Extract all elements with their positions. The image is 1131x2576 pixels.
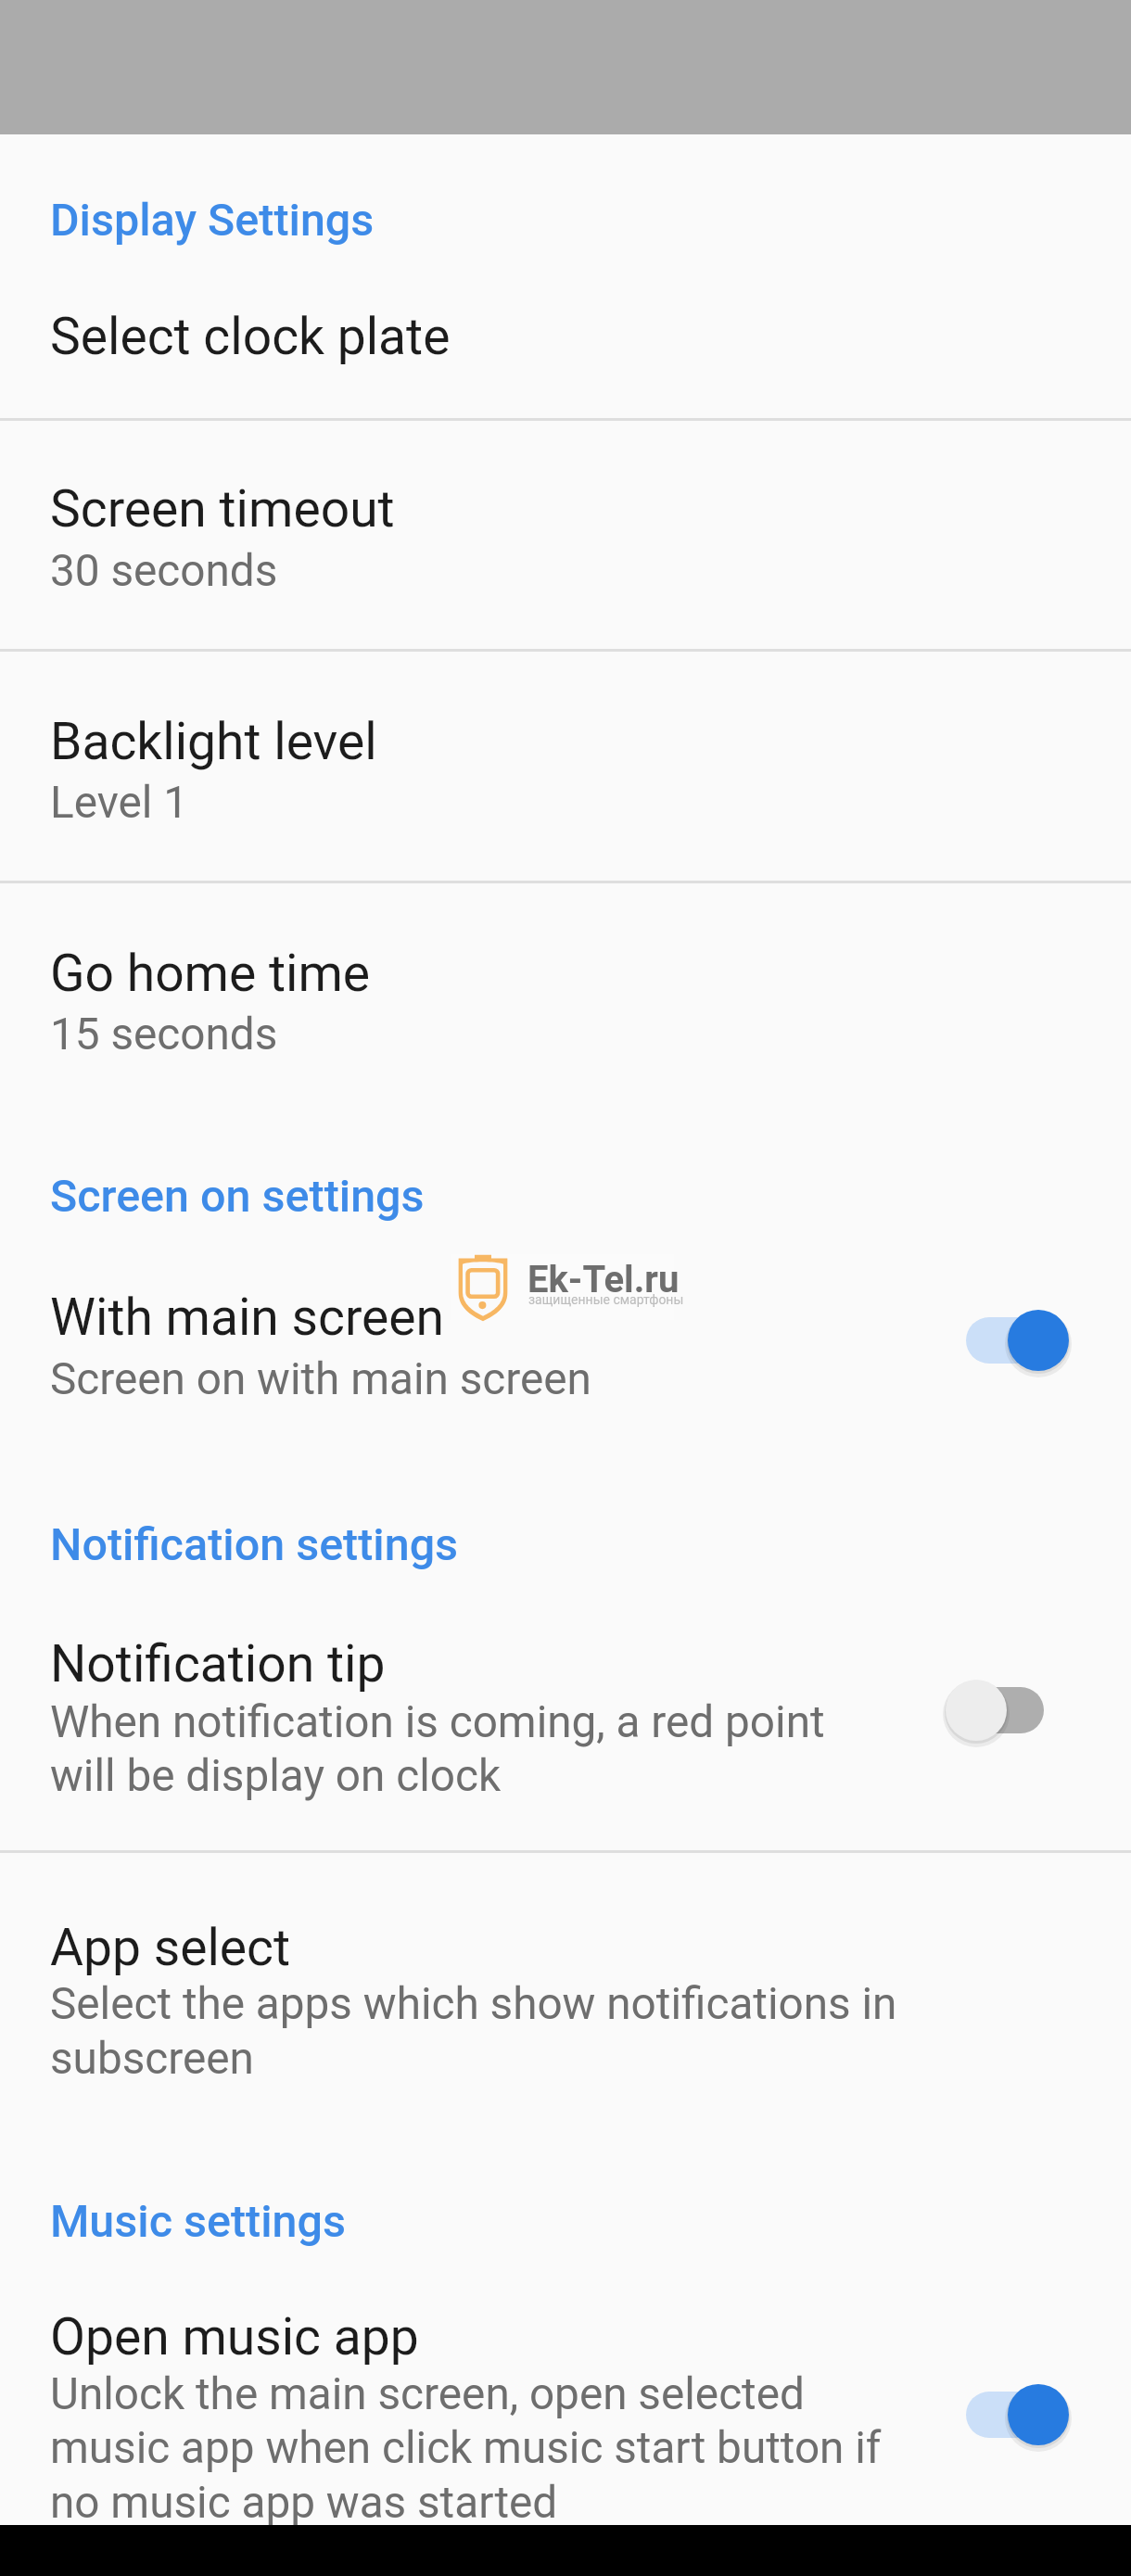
staticText: Display Settings <box>50 194 375 247</box>
staticText: защищенные смартфоны <box>528 1292 684 1307</box>
staticText: Notification tip <box>50 1634 386 1694</box>
staticText: With main screen <box>50 1288 445 1348</box>
staticText: subscreen <box>50 2033 254 2085</box>
button[interactable]: Screen timeout <box>0 421 1131 649</box>
staticText: Go home time <box>50 944 371 1004</box>
staticText: Open music app <box>50 2307 419 2367</box>
staticText: Screen timeout <box>50 479 395 539</box>
staticText: When notification is coming, a red point <box>50 1696 825 1748</box>
button[interactable]: Select clock plate <box>0 135 1131 418</box>
button[interactable]: Open music app <box>0 2262 1131 2525</box>
button[interactable]: Go home time <box>0 883 1131 1112</box>
staticText: Select the apps which show notifications… <box>50 1978 897 2030</box>
staticText: 30 seconds <box>50 545 278 597</box>
staticText: will be display on clock <box>50 1750 502 1802</box>
button[interactable]: Switch off <box>938 1659 1072 1761</box>
button[interactable]: With main screen <box>0 1233 1131 1446</box>
staticText: Unlock the main screen, open selected <box>50 2368 805 2420</box>
staticText: 15 seconds <box>50 1009 278 1060</box>
staticText: App select <box>50 1918 291 1978</box>
staticText: Level 1 <box>50 777 188 829</box>
staticText: Notification settings <box>50 1518 459 1571</box>
staticText: music app when click music start button … <box>50 2422 882 2474</box>
staticText: Ek-Tel.ru <box>527 1258 680 1301</box>
staticText: Screen on with main screen <box>50 1353 591 1405</box>
staticText: no music app was started <box>50 2477 558 2529</box>
button[interactable]: App select <box>0 1853 1131 2132</box>
button[interactable]: Backlight level <box>0 652 1131 881</box>
button[interactable]: Notification tip <box>0 1585 1131 1850</box>
staticText: Music settings <box>50 2195 346 2248</box>
button[interactable]: Switch on <box>938 1289 1072 1391</box>
staticText: Screen on settings <box>50 1170 425 1223</box>
staticText: Select clock plate <box>50 307 451 367</box>
button[interactable]: Switch on <box>938 2364 1072 2466</box>
staticText: Backlight level <box>50 712 377 772</box>
